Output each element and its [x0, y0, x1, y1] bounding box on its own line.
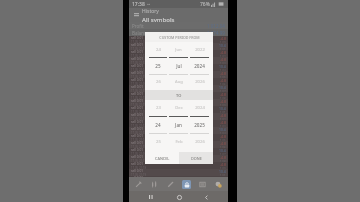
staticText: sell 0.01 — [131, 57, 144, 61]
button[interactable]: 2024 — [190, 100, 209, 150]
staticText: 1 012.04 — [207, 23, 225, 29]
button[interactable]: 24 — [149, 42, 167, 90]
button[interactable]: Profit — [132, 22, 225, 29]
staticText: 1.05 — [220, 139, 226, 141]
button[interactable]: Jun — [169, 42, 188, 90]
staticText: 17.05 21:12 — [131, 54, 147, 57]
staticText: 76% — [200, 1, 210, 8]
staticText: 10.4 — [219, 148, 226, 153]
staticText: 10.4 — [219, 127, 226, 132]
button[interactable]: sell 0.01 — [131, 43, 226, 50]
staticText: sell 0.01 — [131, 162, 144, 166]
staticText: sell 0.01 — [131, 113, 144, 117]
staticText: -4.8 — [220, 50, 226, 55]
staticText: sell 0.01 — [131, 141, 144, 145]
button[interactable]: sell 0.01 — [131, 162, 226, 169]
staticText: 17.05 21:10 — [131, 110, 147, 113]
staticText: 2024 — [194, 63, 205, 69]
staticText: 10.4 — [219, 64, 226, 69]
button[interactable]: sell 0.01 — [131, 148, 226, 155]
button[interactable]: Charts — [148, 178, 161, 191]
button[interactable]: 2022 — [190, 42, 209, 90]
button[interactable]: Messages — [212, 178, 225, 191]
staticText: -4.8 — [220, 36, 226, 41]
staticText: 17:38 — [132, 1, 145, 8]
button[interactable]: sell 0.01 — [131, 99, 226, 106]
staticText: 17.05 21:10 — [131, 40, 147, 43]
staticText: sell 0.01 — [131, 36, 144, 40]
staticText: 17.05 21:17 — [131, 89, 147, 92]
button[interactable]: DONE — [179, 152, 213, 164]
staticText: 23 — [156, 105, 161, 111]
button[interactable]: sell 0.01 — [131, 120, 226, 127]
button[interactable]: sell 0.01 — [131, 36, 226, 43]
staticText: 17.05 21:18 — [131, 166, 147, 169]
staticText: 1.03 — [220, 62, 226, 64]
staticText: sell 0.01 — [131, 92, 144, 96]
staticText: 1.08 — [220, 160, 226, 162]
staticText: 1.07 — [220, 90, 226, 92]
button[interactable]: sell 0.01 — [131, 141, 226, 148]
button[interactable]: History — [180, 178, 193, 191]
button[interactable]: sell 0.01 — [131, 176, 226, 177]
button[interactable]: sell 0.01 — [131, 92, 226, 99]
staticText: -4.8 — [220, 99, 226, 104]
staticText: sell 0.01 — [131, 78, 144, 82]
staticText: -4.8 — [220, 162, 226, 167]
staticText: 17.05 21:11 — [131, 47, 147, 50]
button[interactable]: 23 — [149, 100, 167, 150]
staticText: Aug — [175, 79, 183, 85]
button[interactable]: Quotes — [132, 178, 145, 191]
staticText: 17.05 21:18 — [131, 96, 147, 99]
staticText: sell 0.01 — [131, 127, 144, 131]
button[interactable]: sell 0.01 — [131, 106, 226, 113]
staticText: Dec — [175, 105, 183, 111]
staticText: 17.05 21:14 — [131, 138, 147, 141]
button[interactable]: sell 0.01 — [131, 155, 226, 162]
staticText: 17.05 21:14 — [131, 68, 147, 71]
staticText: sell 0.01 — [131, 85, 144, 89]
button[interactable]: Dec — [169, 100, 188, 150]
button[interactable]: Menu — [132, 11, 140, 19]
button[interactable]: sell 0.01 — [131, 71, 226, 78]
button[interactable]: Home — [174, 192, 184, 202]
button[interactable]: sell 0.01 — [131, 50, 226, 57]
button[interactable]: sell 0.01 — [131, 113, 226, 120]
staticText: -4.8 — [220, 134, 226, 139]
staticText: 25 — [155, 63, 161, 69]
button[interactable]: Trade — [164, 178, 177, 191]
staticText: 17.05 21:16 — [131, 82, 147, 85]
staticText: 10.4 — [219, 106, 226, 111]
staticText: History — [142, 8, 159, 15]
button[interactable]: sell 0.01 — [131, 134, 226, 141]
staticText: 1.05 — [220, 76, 226, 78]
button[interactable]: sell 0.01 — [131, 85, 226, 92]
button[interactable]: News — [196, 178, 209, 191]
button[interactable]: Balance — [132, 29, 225, 36]
button[interactable]: sell 0.01 — [131, 127, 226, 134]
staticText: CUSTOM PERIOD FROM — [159, 35, 200, 40]
staticText: 1.08 — [220, 97, 226, 99]
button[interactable]: Recents — [146, 192, 156, 202]
staticText: -4.8 — [220, 92, 226, 97]
button[interactable]: sell 0.01 — [131, 57, 226, 64]
staticText: 17.05 21:19 — [131, 173, 147, 176]
staticText: -4.8 — [220, 78, 226, 83]
staticText: 1.06 — [220, 83, 226, 85]
staticText: sell 0.01 — [131, 43, 144, 47]
staticText: sell 0.01 — [131, 155, 144, 159]
staticText: 10.4 — [219, 169, 226, 174]
button[interactable]: sell 0.01 — [131, 169, 226, 176]
staticText: sell 0.01 — [131, 169, 144, 173]
staticText: 26 — [156, 79, 161, 85]
button[interactable]: sell 0.01 — [131, 78, 226, 85]
staticText: 17.05 21:17 — [131, 159, 147, 162]
button[interactable]: CANCEL — [145, 152, 179, 164]
staticText: 17.05 21:11 — [131, 117, 147, 120]
staticText: 1.06 — [220, 146, 226, 148]
staticText: 2026 — [195, 79, 205, 85]
button[interactable]: Back — [201, 192, 211, 202]
staticText: sell 0.01 — [131, 120, 144, 124]
button[interactable]: sell 0.01 — [131, 64, 226, 71]
staticText: 1.02 — [220, 55, 226, 57]
